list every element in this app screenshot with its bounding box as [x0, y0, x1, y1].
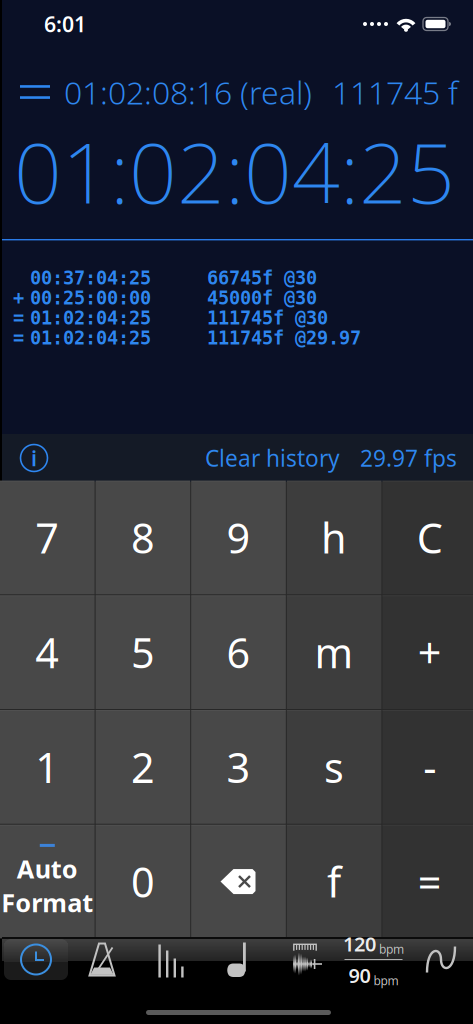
button[interactable]: m — [287, 595, 381, 709]
button[interactable]: = — [382, 825, 473, 938]
staticText: 01:02:04:25 — [30, 307, 151, 329]
button[interactable]: 6 — [191, 595, 286, 709]
staticText: + — [13, 287, 24, 309]
button[interactable]: 4 — [0, 595, 95, 709]
staticText: - — [423, 739, 436, 794]
staticText: m — [315, 625, 354, 680]
button[interactable]: Tempo — [340, 939, 407, 980]
button[interactable]: 2 — [96, 710, 190, 824]
staticText: 5 — [131, 625, 155, 680]
button[interactable]: 5 — [96, 595, 190, 709]
button[interactable]: 7 — [0, 481, 95, 594]
staticText: 111745f @29.97 — [207, 327, 361, 349]
button[interactable]: Auto — [0, 825, 95, 938]
staticText: 111745 f — [332, 71, 458, 113]
button[interactable]: 111745 f — [332, 66, 473, 118]
button[interactable]: h — [287, 481, 381, 594]
button[interactable]: Waveform — [272, 939, 340, 980]
button[interactable]: s — [287, 710, 381, 824]
staticText: 0 — [131, 854, 155, 909]
staticText: 01:02:08:16 (real) — [64, 71, 312, 113]
staticText: = — [13, 327, 24, 349]
staticText: C — [417, 510, 443, 565]
staticText: 2 — [131, 739, 155, 794]
button[interactable]: Timecode — [2, 939, 70, 980]
staticText: f — [327, 854, 341, 909]
button[interactable]: Tone generator — [407, 939, 473, 980]
staticText: i — [31, 444, 37, 472]
button[interactable]: Tap tempo — [137, 939, 205, 980]
button[interactable]: Note length — [205, 939, 272, 980]
staticText: 4 — [35, 625, 59, 680]
staticText: Auto — [17, 852, 78, 885]
button[interactable]: 01:02:08:16 (real) — [64, 66, 312, 118]
button[interactable]: 8 — [96, 481, 190, 594]
staticText: 9 — [226, 510, 250, 565]
staticText: 8 — [131, 510, 155, 565]
staticText: 29.97 fps — [360, 443, 457, 473]
staticText: s — [324, 739, 344, 794]
button[interactable]: 1 — [0, 710, 95, 824]
staticText: 6 — [226, 625, 250, 680]
staticText: h — [321, 510, 347, 565]
staticText: 90 — [348, 962, 370, 989]
staticText: 00:37:04:25 — [30, 267, 151, 289]
button[interactable]: 0 — [96, 825, 190, 938]
button[interactable]: C — [382, 481, 473, 594]
button[interactable]: Delete — [191, 825, 286, 938]
staticText: + — [418, 625, 442, 680]
staticText: 45000f @30 — [207, 287, 317, 309]
staticText: = — [13, 307, 24, 329]
button[interactable]: 3 — [191, 710, 286, 824]
staticText: 120 — [343, 930, 376, 957]
button[interactable]: Metronome — [70, 939, 137, 980]
staticText: 01:02:04:25 — [14, 115, 455, 227]
staticText: 1 — [35, 739, 59, 794]
button[interactable]: Clear history — [205, 434, 340, 482]
staticText: bpm — [373, 973, 398, 988]
staticText: = — [418, 854, 442, 909]
button[interactable]: - — [382, 710, 473, 824]
button[interactable]: Info — [2, 434, 58, 482]
button[interactable]: Equals — switch operation — [2, 66, 64, 118]
staticText: Format — [1, 886, 93, 919]
staticText: 66745f @30 — [207, 267, 317, 289]
staticText: 3 — [226, 739, 250, 794]
button[interactable]: + — [382, 595, 473, 709]
staticText: 6:01 — [44, 10, 86, 38]
staticText: 111745f @30 — [207, 307, 328, 329]
button[interactable]: f — [287, 825, 381, 938]
staticText: 7 — [35, 510, 59, 565]
staticText: Clear history — [205, 443, 340, 473]
staticText: 00:25:00:00 — [30, 287, 151, 309]
button[interactable]: 9 — [191, 481, 286, 594]
staticText: bpm — [379, 941, 404, 957]
staticText: 01:02:04:25 — [30, 327, 151, 349]
button[interactable]: 29.97 fps — [340, 434, 473, 482]
